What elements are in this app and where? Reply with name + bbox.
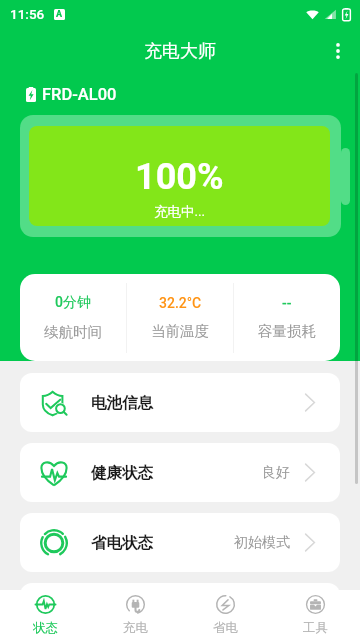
button[interactable]: More options	[314, 28, 360, 74]
staticText: 容量损耗	[258, 322, 316, 340]
staticText: 100%	[135, 156, 224, 198]
staticText: 充电大师	[144, 40, 216, 63]
staticText: 初始模式	[234, 534, 290, 552]
button[interactable]: 工具	[270, 590, 360, 639]
staticText: 电池信息	[91, 393, 153, 413]
staticText: 健康状态	[91, 463, 153, 483]
staticText: 0分钟	[55, 294, 91, 312]
staticText: 状态	[33, 620, 58, 636]
staticText: 良好	[262, 464, 290, 482]
button[interactable]: 电池信息	[20, 373, 340, 432]
staticText: 省电状态	[91, 533, 153, 553]
staticText: 充电	[123, 620, 148, 636]
button[interactable]: 省电	[180, 590, 270, 639]
staticText: 11:56	[10, 6, 45, 22]
staticText: 充电中...	[154, 203, 206, 220]
staticText: 省电	[213, 620, 238, 636]
staticText: 工具	[303, 620, 328, 636]
staticText: 续航时间	[44, 323, 102, 341]
staticText: --	[282, 295, 292, 311]
button[interactable]: 健康状态	[20, 443, 340, 502]
button[interactable]: 省电状态	[20, 513, 340, 572]
staticText: A	[56, 9, 63, 20]
staticText: 当前温度	[151, 322, 209, 340]
button[interactable]: 充电	[90, 590, 180, 639]
button[interactable]: 状态	[0, 590, 90, 639]
staticText: 32.2°C	[159, 295, 202, 311]
staticText: FRD-AL00	[42, 85, 117, 104]
